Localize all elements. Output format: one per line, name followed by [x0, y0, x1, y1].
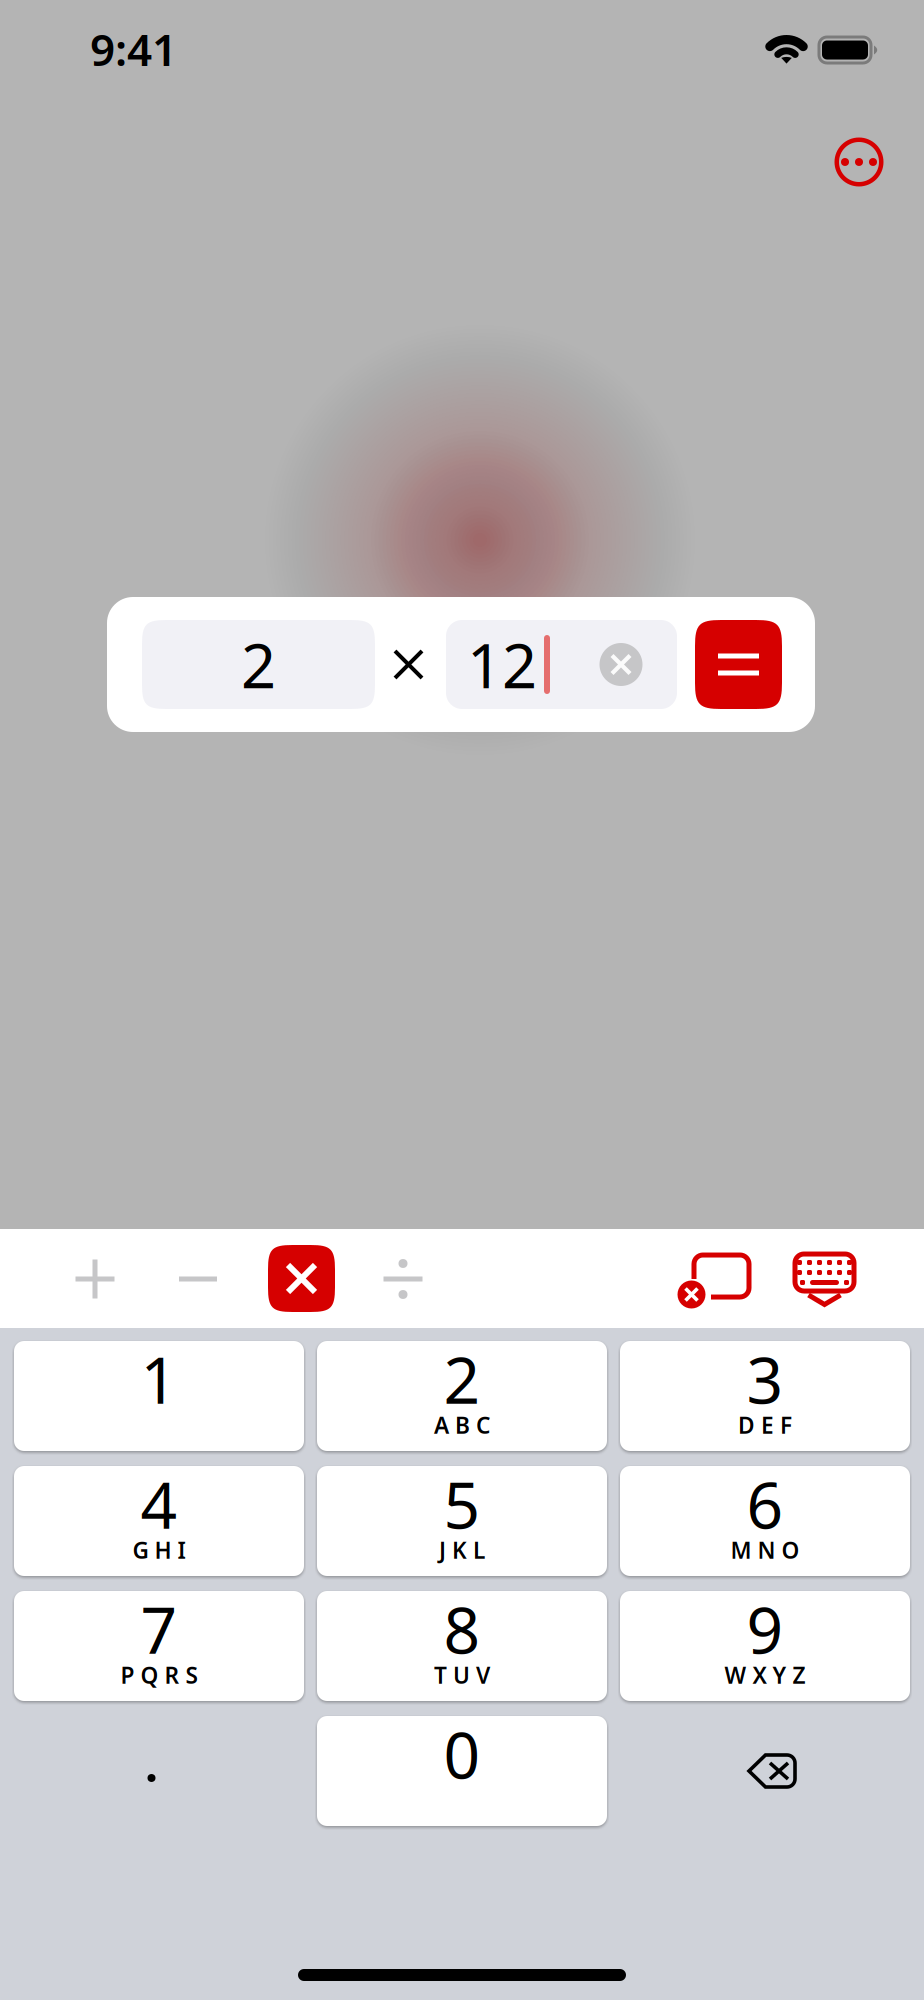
- staticText: D E F: [738, 1410, 792, 1440]
- staticText: M N O: [730, 1535, 799, 1565]
- button[interactable]: 7: [14, 1591, 304, 1701]
- button[interactable]: 1: [14, 1341, 304, 1451]
- button[interactable]: More options: [824, 127, 894, 197]
- button[interactable]: 4: [14, 1466, 304, 1576]
- button[interactable]: Add: [52, 1234, 138, 1324]
- button[interactable]: 2: [317, 1341, 607, 1451]
- button[interactable]: 5: [317, 1466, 607, 1576]
- button[interactable]: Decimal point: [14, 1716, 304, 1826]
- staticText: W X Y Z: [724, 1660, 805, 1690]
- staticText: 0: [443, 1711, 480, 1796]
- button[interactable]: Clear field: [667, 1230, 762, 1329]
- button[interactable]: 8: [317, 1591, 607, 1701]
- staticText: 9: [746, 1586, 783, 1671]
- button[interactable]: Hide keyboard: [777, 1230, 872, 1329]
- staticText: 12: [467, 624, 537, 705]
- staticText: G H I: [132, 1535, 185, 1565]
- staticText: 8: [443, 1586, 480, 1671]
- button[interactable]: Subtract: [155, 1234, 241, 1324]
- staticText: J K L: [439, 1535, 485, 1565]
- button[interactable]: Equals: [695, 620, 782, 709]
- staticText: 4: [140, 1461, 177, 1546]
- button[interactable]: Multiply: [268, 1245, 335, 1312]
- button[interactable]: 3: [620, 1341, 910, 1451]
- staticText: T U V: [434, 1660, 490, 1690]
- button[interactable]: Clear text: [588, 620, 654, 709]
- button[interactable]: 0: [317, 1716, 607, 1826]
- staticText: 9:41: [90, 20, 177, 78]
- staticText: 2: [241, 624, 276, 705]
- button[interactable]: Delete: [620, 1716, 910, 1826]
- button[interactable]: 6: [620, 1466, 910, 1576]
- staticText: 6: [746, 1461, 783, 1546]
- button[interactable]: 9: [620, 1591, 910, 1701]
- button[interactable]: First operand, 2: [142, 620, 375, 709]
- staticText: P Q R S: [120, 1660, 197, 1690]
- staticText: 2: [443, 1336, 480, 1421]
- staticText: 1: [140, 1336, 177, 1421]
- staticText: 3: [746, 1336, 783, 1421]
- staticText: 7: [140, 1586, 177, 1671]
- button[interactable]: Divide: [360, 1234, 446, 1324]
- staticText: A B C: [434, 1410, 490, 1440]
- staticText: 5: [443, 1461, 480, 1546]
